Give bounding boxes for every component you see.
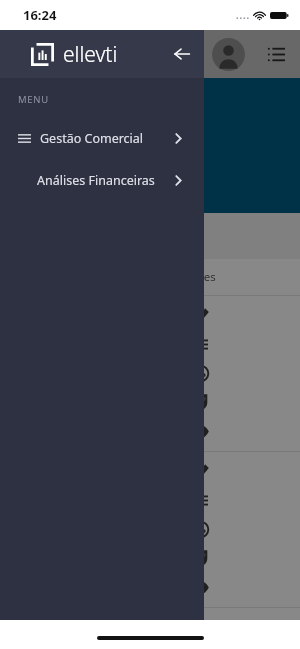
button[interactable]: Gestão Comercial <box>0 123 204 153</box>
button[interactable]: List view <box>252 30 300 78</box>
staticText: MENU <box>18 93 49 106</box>
button[interactable]: Análises Financeiras <box>0 165 204 195</box>
button[interactable]: Edit <box>172 457 228 486</box>
staticText: 16:24 <box>23 6 57 24</box>
staticText: Gestão Comercial <box>40 130 144 147</box>
staticText: ellevti <box>63 40 118 69</box>
staticText: Ações <box>184 269 216 285</box>
button[interactable]: Contacts <box>172 359 228 388</box>
button[interactable]: Profile <box>204 30 252 78</box>
button[interactable]: Details <box>172 330 228 359</box>
button[interactable]: Contacts <box>172 515 228 544</box>
button[interactable]: Approve <box>172 388 228 417</box>
button[interactable]: Approve <box>172 544 228 573</box>
button[interactable]: Details <box>172 486 228 515</box>
button[interactable]: View <box>172 573 228 602</box>
button[interactable]: View <box>172 417 228 446</box>
button[interactable]: Back <box>160 32 204 76</box>
button[interactable]: Edit <box>172 301 228 330</box>
staticText: Análises Financeiras <box>37 172 155 189</box>
button[interactable]: Edit <box>172 613 228 642</box>
